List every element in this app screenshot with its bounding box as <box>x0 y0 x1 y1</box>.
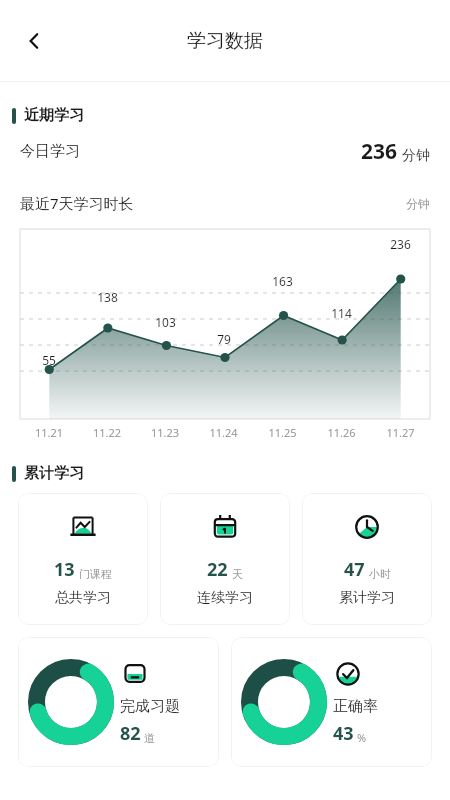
staticText: 分钟 <box>402 147 430 165</box>
staticText: 79 <box>217 331 231 347</box>
button[interactable]: 正确率 <box>231 637 432 767</box>
button[interactable]: 22 <box>160 493 290 625</box>
staticText: 11.27 <box>371 425 430 440</box>
staticText: 学习数据 <box>187 29 263 53</box>
staticText: 累计学习 <box>24 464 84 483</box>
staticText: 22 <box>207 557 228 582</box>
staticText: 11.22 <box>78 425 136 440</box>
staticText: 今日学习 <box>20 142 80 161</box>
staticText: 连续学习 <box>197 589 253 607</box>
staticText: 道 <box>144 731 155 745</box>
staticText: 236 <box>390 236 411 252</box>
staticText: 小时 <box>369 567 391 581</box>
staticText: 总共学习 <box>55 589 111 607</box>
staticText: 55 <box>42 352 56 368</box>
staticText: 114 <box>331 305 352 321</box>
staticText: 11.23 <box>136 425 194 440</box>
staticText: 13 <box>54 557 75 582</box>
staticText: 最近7天学习时长 <box>20 193 134 213</box>
staticText: 正确率 <box>333 697 378 716</box>
staticText: 47 <box>344 557 365 582</box>
staticText: 82 <box>120 721 141 746</box>
staticText: 103 <box>155 314 176 330</box>
staticText: 11.24 <box>194 425 253 440</box>
button[interactable]: Back <box>10 17 58 65</box>
button[interactable]: 完成习题 <box>18 637 219 767</box>
staticText: 236 <box>361 137 398 166</box>
staticText: 门课程 <box>79 567 112 581</box>
staticText: 完成习题 <box>120 697 180 716</box>
staticText: 分钟 <box>406 196 430 211</box>
staticText: 163 <box>272 273 293 289</box>
staticText: 43 <box>333 721 354 746</box>
staticText: 138 <box>97 289 118 305</box>
staticText: 11.21 <box>20 425 78 440</box>
staticText: 累计学习 <box>339 589 395 607</box>
staticText: 11.26 <box>312 425 371 440</box>
staticText: 近期学习 <box>24 106 84 125</box>
staticText: % <box>357 730 367 745</box>
staticText: 11.25 <box>253 425 312 440</box>
staticText: 天 <box>232 567 243 581</box>
button[interactable]: 今日学习 <box>0 125 450 177</box>
button[interactable]: 47 <box>302 493 432 625</box>
button[interactable]: 13 <box>18 493 148 625</box>
